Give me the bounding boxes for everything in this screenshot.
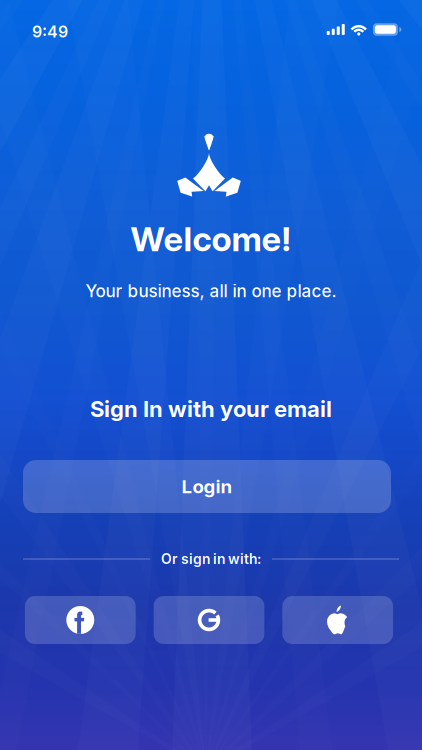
button[interactable]: Sign in with Apple bbox=[282, 596, 393, 644]
staticText: Or sign in with: bbox=[161, 551, 261, 567]
staticText: Your business, all in one place. bbox=[85, 281, 336, 301]
staticText: Login bbox=[181, 475, 232, 498]
button[interactable]: Login bbox=[23, 460, 391, 513]
button[interactable]: Sign in with Google bbox=[154, 596, 264, 644]
staticText: Sign In with your email bbox=[90, 396, 332, 422]
staticText: 9:49 bbox=[32, 22, 68, 41]
button[interactable]: Sign in with Facebook bbox=[25, 596, 136, 644]
staticText: Welcome! bbox=[130, 218, 291, 259]
